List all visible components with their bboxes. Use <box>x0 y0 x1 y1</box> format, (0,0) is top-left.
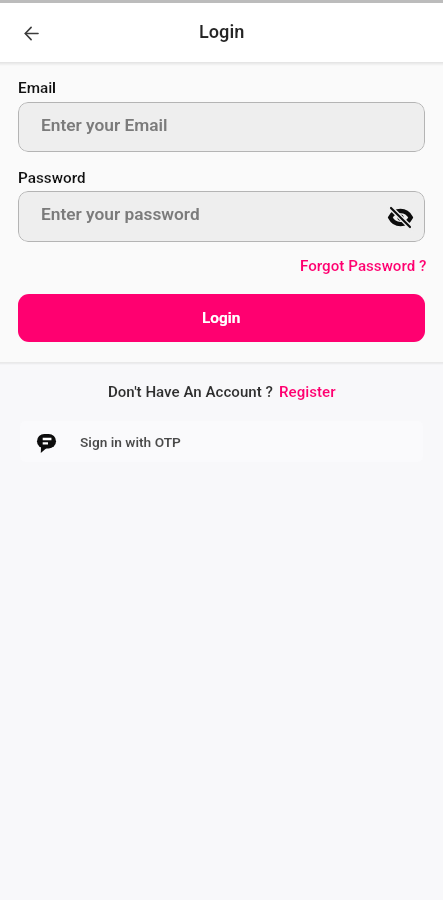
staticText: Login <box>199 21 245 42</box>
staticText: Don't Have An Account ? <box>108 383 273 401</box>
button[interactable]: Back <box>11 13 51 53</box>
button[interactable]: Enter your password <box>18 191 425 242</box>
staticText: Enter your Email <box>41 115 168 135</box>
staticText: Enter your password <box>41 204 200 224</box>
staticText: Email <box>18 79 57 97</box>
button[interactable]: Forgot Password ? <box>300 257 427 275</box>
button[interactable]: Show password <box>382 199 418 235</box>
staticText: Password <box>18 169 86 187</box>
button[interactable]: Register <box>279 383 336 401</box>
staticText: Login <box>202 309 241 327</box>
button[interactable]: Sign in with OTP <box>20 421 423 462</box>
button[interactable]: Enter your Email <box>18 102 425 152</box>
staticText: Sign in with OTP <box>80 434 181 450</box>
button[interactable]: Login <box>18 294 425 342</box>
